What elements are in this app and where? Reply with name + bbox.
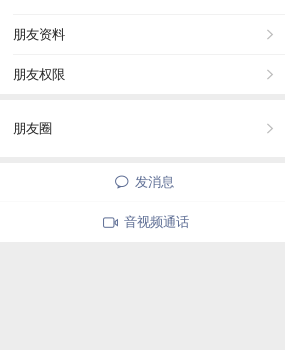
staticText: 发消息 (135, 174, 174, 190)
staticText: 朋友资料 (13, 26, 65, 43)
button[interactable]: 朋友权限 (0, 55, 285, 94)
button[interactable]: 朋友资料 (0, 15, 285, 54)
button[interactable]: 音视频通话 (0, 202, 285, 242)
staticText: 音视频通话 (124, 214, 189, 230)
staticText: 朋友圈 (13, 120, 52, 137)
button[interactable]: 发消息 (0, 163, 285, 201)
button[interactable]: 朋友圈 (0, 100, 285, 157)
staticText: 朋友权限 (13, 66, 65, 83)
